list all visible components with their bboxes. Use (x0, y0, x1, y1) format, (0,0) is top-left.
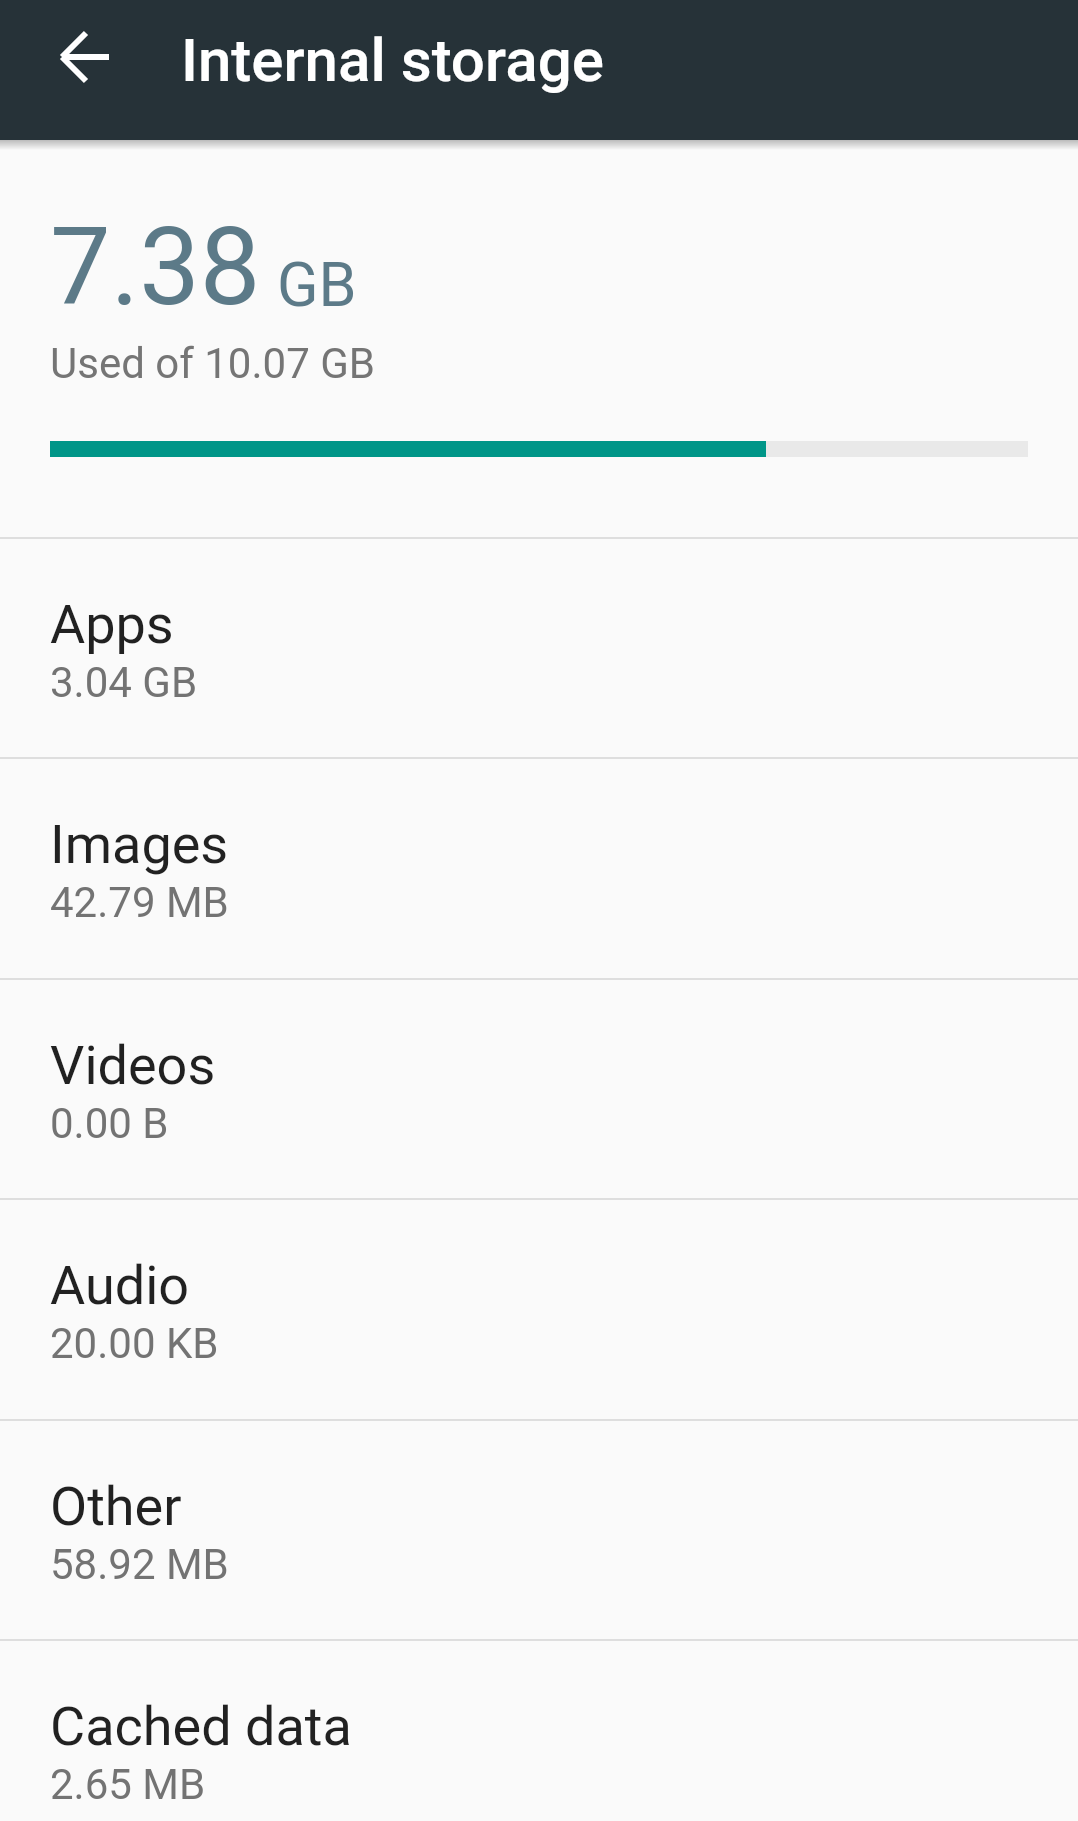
staticText: Other (50, 1475, 182, 1538)
button[interactable]: Other (0, 1421, 1078, 1639)
staticText: Images (50, 813, 229, 876)
button[interactable]: Images (0, 759, 1078, 977)
staticText: 7.38 (50, 204, 261, 331)
staticText: 0.00 B (50, 1099, 169, 1148)
staticText: GB (277, 249, 357, 320)
staticText: 58.92 MB (50, 1540, 229, 1589)
staticText: Videos (50, 1034, 216, 1097)
staticText: Used of 10.07 GB (50, 339, 375, 388)
button[interactable]: Audio (0, 1200, 1078, 1418)
button[interactable]: Videos (0, 980, 1078, 1198)
staticText: 42.79 MB (50, 878, 229, 927)
staticText: 3.04 GB (50, 658, 198, 707)
staticText: Internal storage (181, 25, 604, 95)
staticText: 2.65 MB (50, 1760, 206, 1809)
staticText: 20.00 KB (50, 1319, 219, 1368)
button[interactable]: Cached data (0, 1641, 1078, 1821)
button[interactable]: Apps (0, 539, 1078, 757)
button[interactable] (49, 21, 121, 93)
staticText: Cached data (50, 1695, 352, 1758)
staticText: Audio (50, 1254, 190, 1317)
staticText: Apps (50, 593, 174, 656)
